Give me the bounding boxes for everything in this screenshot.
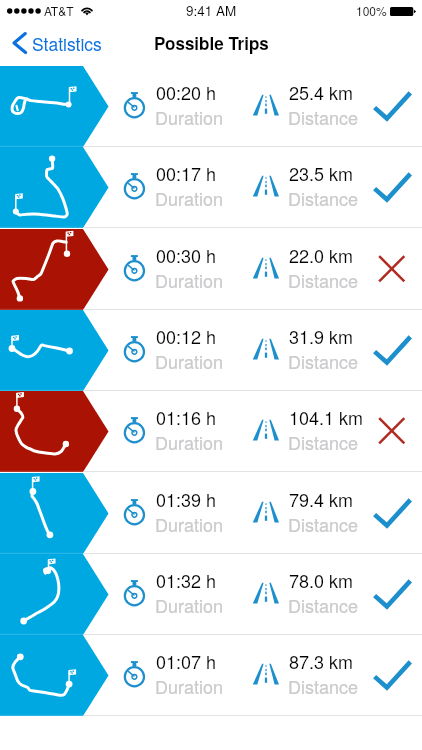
other: Trip accepted xyxy=(372,91,412,121)
staticText: Duration xyxy=(155,267,223,293)
staticText: 00:30 h xyxy=(156,242,217,268)
staticText: AT&T xyxy=(44,2,74,19)
staticText: 79.4 km xyxy=(289,486,354,512)
button[interactable]: 01:16 h xyxy=(0,391,422,472)
staticText: 78.0 km xyxy=(289,567,354,593)
staticText: 00:17 h xyxy=(156,160,217,186)
button[interactable]: 01:32 h xyxy=(0,554,422,635)
staticText: 01:07 h xyxy=(156,648,217,674)
button[interactable]: 01:07 h xyxy=(0,635,422,716)
staticText: Duration xyxy=(155,511,223,537)
staticText: Distance xyxy=(288,673,358,699)
button[interactable]: 00:17 h xyxy=(0,147,422,228)
button[interactable]: 00:12 h xyxy=(0,310,422,391)
other: Trip accepted xyxy=(372,660,412,690)
staticText: Distance xyxy=(288,348,358,374)
staticText: 01:16 h xyxy=(156,404,217,430)
staticText: Duration xyxy=(155,429,223,455)
staticText: Duration xyxy=(155,592,223,618)
other: Trip accepted xyxy=(372,172,412,202)
staticText: 87.3 km xyxy=(289,648,354,674)
other: Trip rejected xyxy=(378,255,406,283)
staticText: Distance xyxy=(288,511,358,537)
staticText: 23.5 km xyxy=(289,160,354,186)
staticText: Possible Trips xyxy=(154,31,269,55)
staticText: Distance xyxy=(288,267,358,293)
staticText: 25.4 km xyxy=(289,79,354,105)
staticText: Duration xyxy=(155,348,223,374)
staticText: 01:39 h xyxy=(156,486,217,512)
button[interactable]: 01:39 h xyxy=(0,473,422,554)
staticText: Distance xyxy=(288,429,358,455)
staticText: Distance xyxy=(288,185,358,211)
button[interactable]: Statistics xyxy=(8,28,112,56)
staticText: Duration xyxy=(155,673,223,699)
staticText: 104.1 km xyxy=(289,404,364,430)
staticText: Duration xyxy=(155,185,223,211)
other: Trip accepted xyxy=(372,335,412,365)
staticText: Distance xyxy=(288,104,358,130)
staticText: 01:32 h xyxy=(156,567,217,593)
other: Trip accepted xyxy=(372,579,412,609)
staticText: 9:41 AM xyxy=(186,1,237,20)
staticText: Distance xyxy=(288,592,358,618)
staticText: Statistics xyxy=(32,31,102,56)
staticText: 22.0 km xyxy=(289,242,354,268)
button[interactable]: 00:20 h xyxy=(0,66,422,147)
staticText: 31.9 km xyxy=(289,323,354,349)
other: Trip accepted xyxy=(372,498,412,528)
staticText: 100% xyxy=(356,2,387,19)
button[interactable]: 00:30 h xyxy=(0,229,422,310)
other: Trip rejected xyxy=(378,417,406,445)
staticText: 00:20 h xyxy=(156,79,217,105)
staticText: 00:12 h xyxy=(156,323,217,349)
staticText: Duration xyxy=(155,104,223,130)
